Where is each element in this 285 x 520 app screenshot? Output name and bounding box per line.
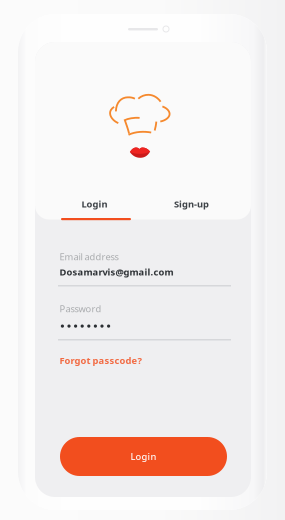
staticText: Email address	[59, 250, 118, 263]
staticText: Sign-up	[174, 198, 209, 210]
staticText: Dosamarvis@gmail.com	[59, 266, 173, 278]
staticText: Password	[59, 302, 101, 315]
button[interactable]: Login	[60, 437, 227, 476]
button[interactable]: Forgot passcode?	[59, 355, 141, 366]
button[interactable]: Sign-up	[143, 193, 240, 215]
staticText: Forgot passcode?	[59, 354, 141, 367]
button[interactable]: Login	[46, 193, 143, 215]
staticText: Login	[130, 450, 156, 463]
staticText: Login	[81, 198, 107, 210]
